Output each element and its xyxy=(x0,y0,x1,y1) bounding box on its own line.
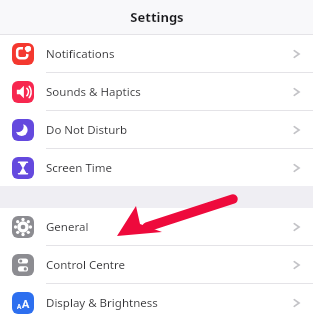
staticText: General xyxy=(46,219,89,235)
staticText: Display & Brightness xyxy=(46,295,158,311)
staticText: A xyxy=(17,302,22,311)
button[interactable]: General xyxy=(0,208,313,246)
staticText: Settings xyxy=(130,8,184,26)
staticText: Sounds & Haptics xyxy=(46,84,141,100)
button[interactable]: Notifications xyxy=(0,35,313,73)
staticText: A xyxy=(22,296,30,311)
staticText: Notifications xyxy=(46,46,115,62)
button[interactable]: Sounds & Haptics xyxy=(0,73,313,111)
staticText: Screen Time xyxy=(46,160,113,176)
button[interactable]: Screen Time xyxy=(0,149,313,186)
button[interactable]: A xyxy=(0,284,313,321)
button[interactable]: Do Not Disturb xyxy=(0,111,313,149)
button[interactable]: Control Centre xyxy=(0,246,313,284)
staticText: Do Not Disturb xyxy=(46,122,128,138)
staticText: Control Centre xyxy=(46,257,125,273)
